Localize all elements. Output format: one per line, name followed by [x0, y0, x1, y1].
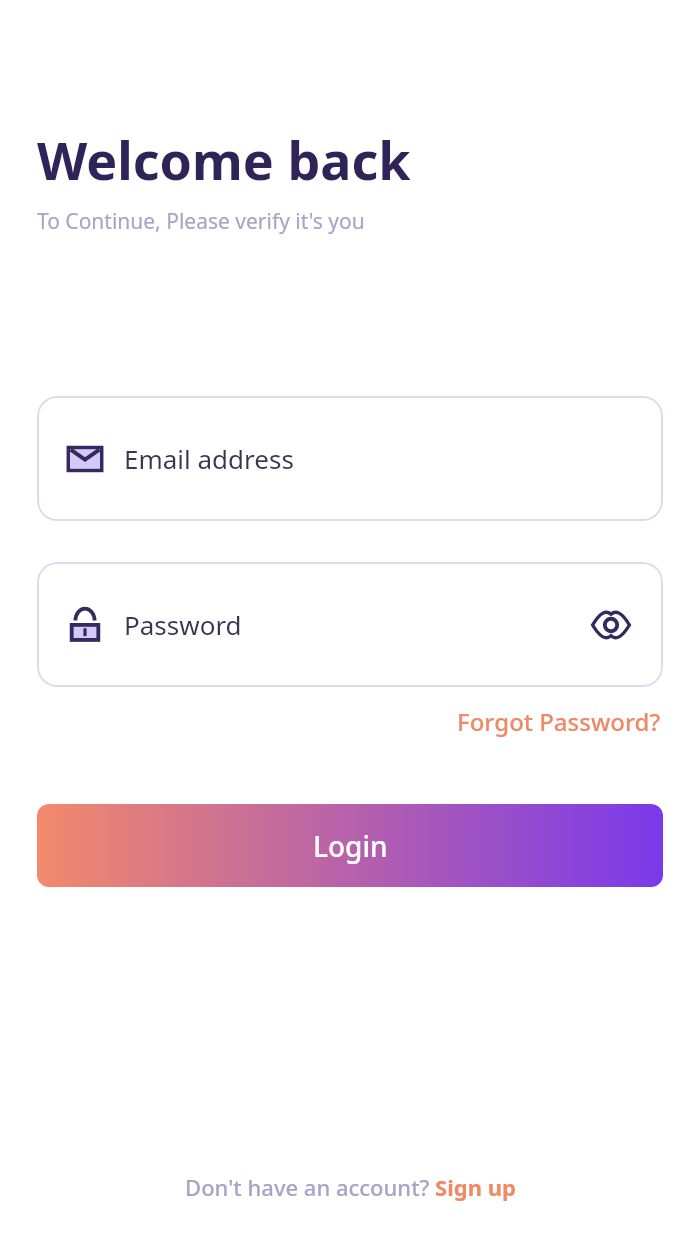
button[interactable]: Email address [37, 396, 663, 521]
staticText: Password [124, 607, 242, 642]
staticText: Email address [124, 441, 294, 476]
button[interactable]: Don't have an account? Sign up [181, 1168, 520, 1206]
staticText: Don't have an account? Sign up [185, 1172, 516, 1202]
button[interactable]: Show password [587, 601, 635, 649]
staticText: To Continue, Please verify it's you [37, 207, 365, 236]
button[interactable]: Password [37, 562, 663, 687]
staticText: Login [313, 827, 388, 865]
staticText: Forgot Password? [457, 705, 661, 738]
staticText: Welcome back [37, 124, 411, 195]
button[interactable]: Login [37, 804, 663, 887]
button[interactable]: Forgot Password? [455, 701, 663, 742]
